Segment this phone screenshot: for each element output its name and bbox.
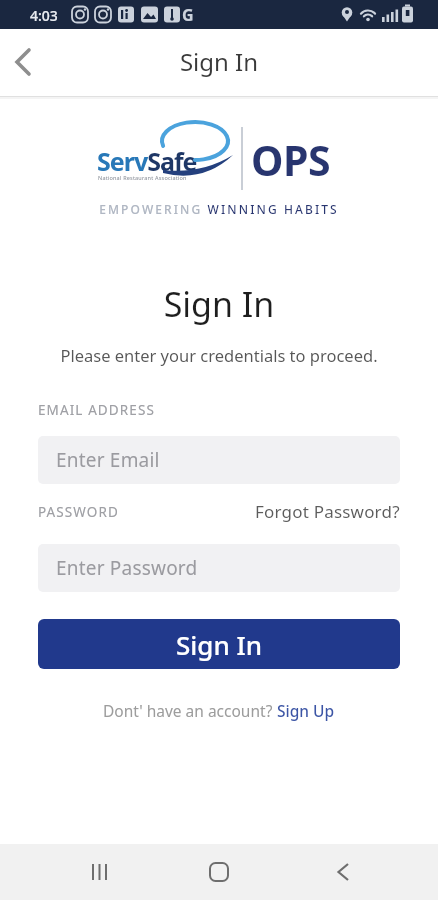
staticText: PASSWORD xyxy=(38,503,119,521)
button[interactable]: Forgot Password? xyxy=(255,500,400,523)
button[interactable] xyxy=(320,850,364,894)
staticText: National Restaurant Association xyxy=(98,174,187,181)
staticText: OPS xyxy=(251,132,330,188)
button[interactable] xyxy=(77,850,121,894)
staticText: Sign In xyxy=(176,627,263,662)
staticText: EMPOWERING WINNING HABITS xyxy=(0,201,438,217)
button[interactable]: Enter Password xyxy=(38,544,400,592)
staticText: 4:03 xyxy=(30,6,58,25)
button[interactable]: Enter Email xyxy=(38,436,400,484)
staticText: Sign In xyxy=(0,281,438,327)
staticText: Please enter your credentials to proceed… xyxy=(0,344,438,366)
staticText: Enter Email xyxy=(56,447,160,473)
button[interactable] xyxy=(2,39,48,85)
button[interactable]: Sign Up xyxy=(277,700,335,721)
staticText: EMAIL ADDRESS xyxy=(38,401,155,419)
staticText: Enter Password xyxy=(56,555,198,581)
staticText: ServSafe xyxy=(97,144,197,178)
staticText: Sign In xyxy=(0,45,438,78)
button[interactable]: Sign In xyxy=(38,619,400,669)
staticText: Dont' have an account? xyxy=(103,700,277,721)
staticText: G xyxy=(182,4,194,26)
button[interactable] xyxy=(197,850,241,894)
